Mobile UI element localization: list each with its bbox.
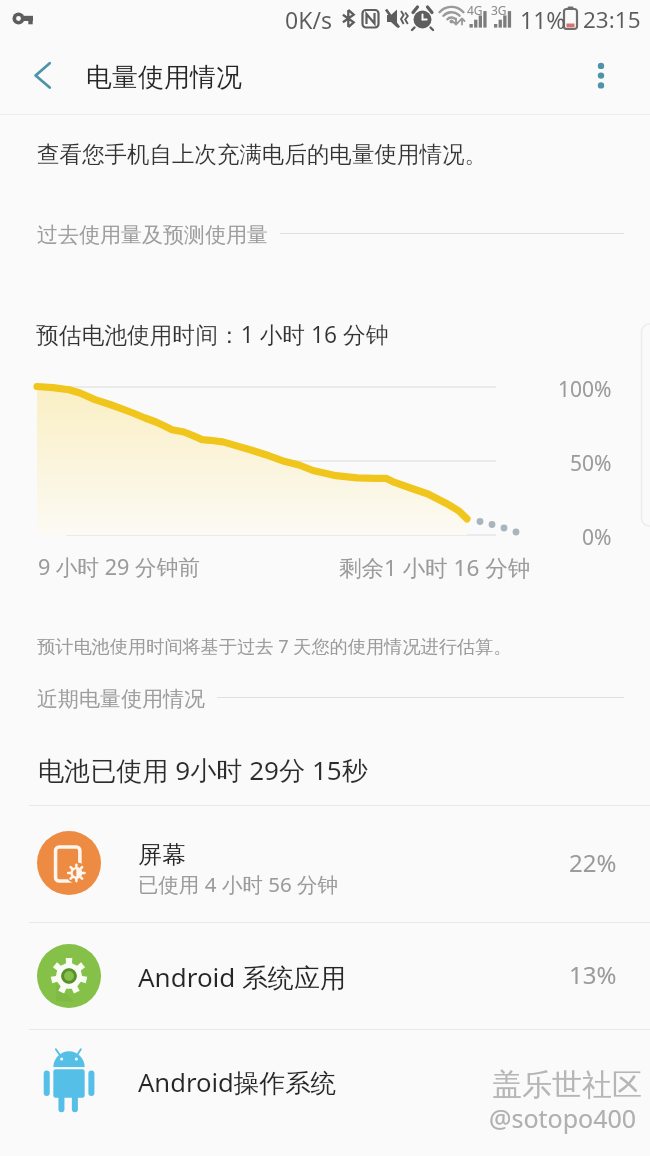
staticText: 近期电量使用情况 xyxy=(37,686,205,710)
staticText: 3G xyxy=(491,2,507,18)
staticText: 查看您手机自上次充满电后的电量使用情况。 xyxy=(37,140,487,168)
staticText: 22% xyxy=(569,846,617,879)
staticText: 预计电池使用时间将基于过去 7 天您的使用情况进行估算。 xyxy=(37,634,512,659)
staticText: 预估电池使用时间：1 小时 16 分钟 xyxy=(36,319,389,350)
staticText: Android 系统应用 xyxy=(138,959,347,995)
staticText: 剩余1 小时 16 分钟 xyxy=(339,552,531,583)
staticText: 50% xyxy=(570,449,612,478)
staticText: 盖乐世社区 xyxy=(492,1066,642,1104)
staticText: @sotopo400 xyxy=(489,1101,637,1135)
staticText: 电量使用情况 xyxy=(86,61,242,94)
button[interactable]: Back xyxy=(10,40,76,106)
staticText: 13% xyxy=(569,958,617,991)
staticText: 过去使用量及预测使用量 xyxy=(37,222,268,246)
staticText: 0% xyxy=(582,523,612,552)
staticText: 100% xyxy=(558,375,612,404)
staticText: 23:15 xyxy=(583,4,641,35)
staticText: 11% xyxy=(520,4,566,35)
staticText: 电池已使用 9小时 29分 15秒 xyxy=(38,752,368,788)
button[interactable]: Android 系统应用 xyxy=(0,922,650,1029)
staticText: 4G xyxy=(467,2,483,18)
staticText: 9 小时 29 分钟前 xyxy=(38,552,200,582)
button[interactable]: Android操作系统 xyxy=(0,1029,650,1134)
staticText: 屏幕 xyxy=(138,840,186,870)
button[interactable]: More options xyxy=(569,40,633,104)
button[interactable]: 屏幕 xyxy=(0,805,650,922)
staticText: 0K/s xyxy=(285,4,332,35)
staticText: Android操作系统 xyxy=(138,1065,337,1100)
staticText: 已使用 4 小时 56 分钟 xyxy=(138,870,338,898)
